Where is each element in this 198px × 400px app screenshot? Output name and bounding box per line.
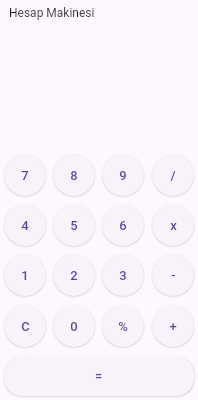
button[interactable]: 1 [4,254,46,296]
button[interactable]: 2 [53,254,95,296]
staticText: / [170,168,176,183]
button[interactable]: 4 [4,204,46,246]
staticText: 2 [70,268,78,283]
staticText: 1 [21,268,29,283]
button[interactable]: 6 [102,204,144,246]
button[interactable]: 3 [102,254,144,296]
staticText: 8 [70,168,78,183]
button[interactable]: 9 [102,154,144,196]
staticText: - [171,268,176,283]
staticText: 6 [119,218,127,233]
staticText: Hesap Makinesi [9,6,95,20]
staticText: 5 [70,218,78,233]
button[interactable]: - [152,254,194,296]
staticText: 0 [70,319,78,334]
staticText: 9 [119,168,127,183]
button[interactable]: 0 [53,305,95,347]
button[interactable]: % [102,305,144,347]
staticText: % [118,319,128,334]
staticText: C [21,319,30,334]
staticText: + [169,319,177,334]
button[interactable]: 5 [53,204,95,246]
button[interactable]: = [4,356,194,396]
staticText: 4 [21,218,29,233]
staticText: = [95,369,103,384]
staticText: 3 [119,268,127,283]
staticText: x [170,218,177,233]
button[interactable]: C [4,305,46,347]
button[interactable]: 8 [53,154,95,196]
button[interactable]: 7 [4,154,46,196]
staticText: 7 [21,168,29,183]
button[interactable]: x [152,204,194,246]
button[interactable]: + [152,305,194,347]
button[interactable]: / [152,154,194,196]
